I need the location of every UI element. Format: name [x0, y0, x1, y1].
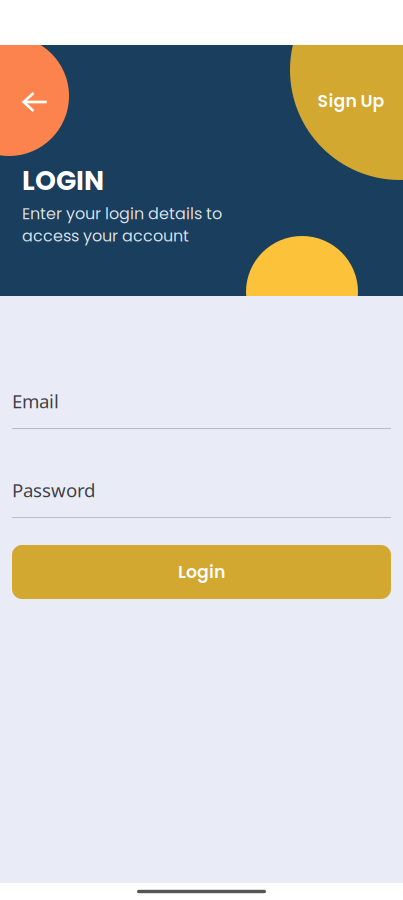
staticText: Login	[178, 560, 225, 584]
staticText: Enter your login details to access your …	[22, 202, 222, 247]
staticText: Password	[12, 478, 95, 502]
button[interactable]: Back	[8, 75, 62, 129]
staticText: LOGIN	[22, 162, 104, 199]
button[interactable]: Sign Up	[296, 81, 403, 121]
staticText: Sign Up	[317, 89, 384, 113]
button[interactable]: Login	[12, 545, 391, 599]
staticText: Email	[12, 389, 59, 413]
